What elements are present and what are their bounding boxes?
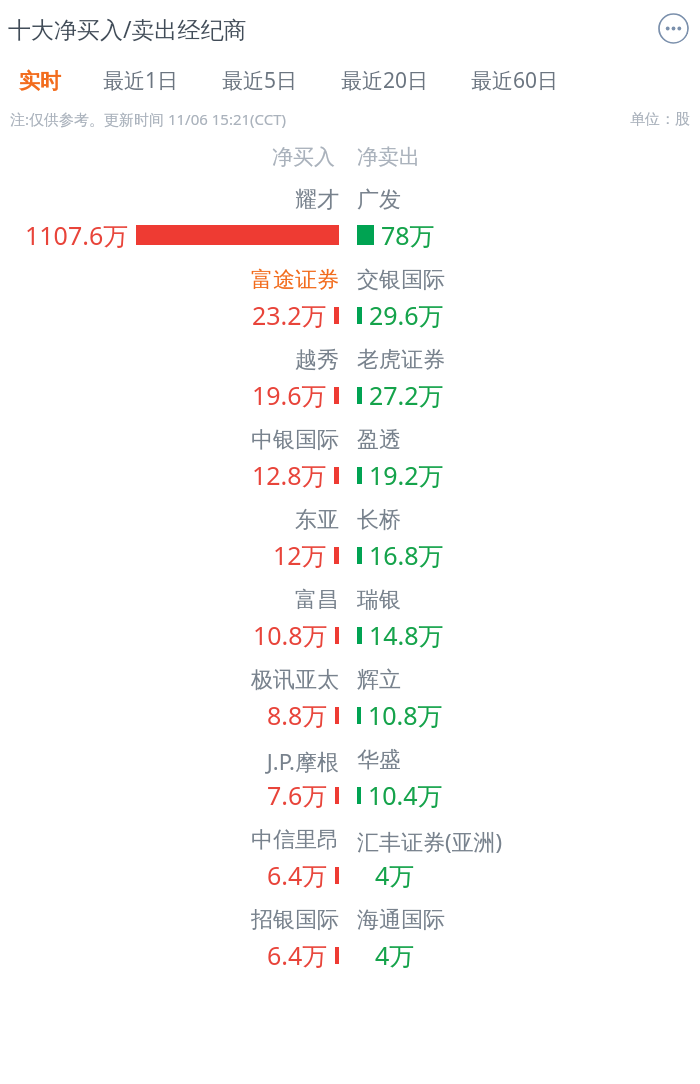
staticText: 4万	[375, 858, 415, 892]
staticText: 汇丰证券(亚洲)	[357, 826, 503, 856]
staticText: 19.6万	[252, 378, 327, 412]
button[interactable]: More options	[657, 12, 689, 44]
staticText: 招银国际	[251, 906, 339, 934]
staticText: 10.8万	[253, 618, 328, 652]
staticText: 辉立	[357, 666, 401, 694]
button[interactable]: 招银国际	[0, 904, 700, 984]
button[interactable]: 中银国际	[0, 424, 700, 504]
staticText: 最近60日	[471, 66, 559, 95]
button[interactable]: 十大净买入/卖出经纪商	[8, 13, 247, 44]
staticText: 瑞银	[357, 586, 401, 614]
staticText: 中信里昂	[251, 826, 339, 854]
staticText: 净卖出	[357, 144, 420, 170]
button[interactable]: 中信里昂	[0, 824, 700, 904]
staticText: 注:仅供参考。更新时间 11/06 15:21(CCT)	[10, 109, 287, 129]
staticText: 8.8万	[267, 698, 328, 732]
button[interactable]: 最近20日	[341, 66, 429, 95]
staticText: 23.2万	[252, 298, 327, 332]
staticText: 7.6万	[267, 778, 328, 812]
staticText: 长桥	[357, 506, 401, 534]
staticText: J.P.摩根	[266, 746, 339, 776]
staticText: 12.8万	[252, 458, 327, 492]
staticText: 中银国际	[251, 426, 339, 454]
staticText: 10.4万	[368, 778, 443, 812]
staticText: 东亚	[295, 506, 339, 534]
staticText: 海通国际	[357, 906, 445, 934]
button[interactable]: 最近5日	[222, 66, 298, 95]
staticText: 19.2万	[369, 458, 444, 492]
staticText: 最近1日	[103, 66, 179, 95]
staticText: 极讯亚太	[251, 666, 339, 694]
staticText: 富昌	[295, 586, 339, 614]
staticText: 富途证券	[251, 266, 339, 294]
button[interactable]: J.P.摩根	[0, 744, 700, 824]
staticText: 净买入	[272, 144, 335, 170]
staticText: 实时	[19, 68, 61, 94]
button[interactable]: 耀才	[0, 184, 700, 264]
button[interactable]: 东亚	[0, 504, 700, 584]
button[interactable]: 富途证券	[0, 264, 700, 344]
staticText: 耀才	[295, 186, 339, 214]
button[interactable]: 极讯亚太	[0, 664, 700, 744]
staticText: 广发	[357, 186, 401, 214]
staticText: 老虎证券	[357, 346, 445, 374]
staticText: 12万	[273, 538, 327, 572]
staticText: 27.2万	[369, 378, 444, 412]
staticText: 78万	[381, 218, 435, 252]
staticText: 最近20日	[341, 66, 429, 95]
staticText: 盈透	[357, 426, 401, 454]
staticText: 华盛	[357, 746, 401, 774]
button[interactable]: 最近60日	[471, 66, 559, 95]
staticText: 10.8万	[368, 698, 443, 732]
staticText: 14.8万	[369, 618, 444, 652]
staticText: 4万	[375, 938, 415, 972]
button[interactable]: 富昌	[0, 584, 700, 664]
staticText: 16.8万	[369, 538, 444, 572]
button[interactable]: 最近1日	[103, 66, 179, 95]
staticText: 6.4万	[267, 938, 328, 972]
staticText: 交银国际	[357, 266, 445, 294]
button[interactable]: 实时	[19, 68, 61, 94]
staticText: 29.6万	[369, 298, 444, 332]
button[interactable]: 越秀	[0, 344, 700, 424]
staticText: 1107.6万	[25, 218, 129, 252]
staticText: 单位：股	[630, 110, 690, 129]
staticText: 最近5日	[222, 66, 298, 95]
staticText: 6.4万	[267, 858, 328, 892]
staticText: 越秀	[295, 346, 339, 374]
